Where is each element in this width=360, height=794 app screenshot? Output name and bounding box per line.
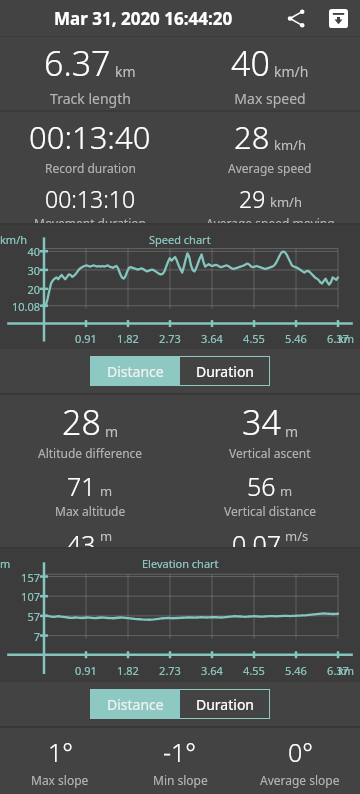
staticText: Distance	[107, 695, 164, 714]
staticText: 71	[67, 469, 96, 503]
button[interactable]: Share	[278, 0, 314, 36]
staticText: 7	[0, 629, 40, 644]
staticText: Distance	[107, 362, 164, 381]
staticText: Average slope	[260, 772, 340, 788]
staticText: m	[105, 422, 119, 441]
staticText: 56	[247, 469, 276, 503]
staticText: Max altitude	[55, 503, 126, 519]
staticText: m	[280, 482, 293, 500]
staticText: 3.64	[190, 663, 234, 678]
staticText: Average speed	[228, 160, 312, 176]
staticText: m	[100, 482, 113, 500]
staticText: 157	[0, 570, 40, 585]
staticText: 0.91	[64, 663, 108, 678]
staticText: km	[338, 663, 355, 678]
staticText: 40	[231, 40, 270, 86]
staticText: 00:13:10	[45, 183, 136, 214]
staticText: 1.82	[106, 663, 150, 678]
staticText: Max speed	[234, 89, 306, 108]
staticText: 43	[67, 527, 96, 547]
staticText: 4.55	[232, 663, 276, 678]
staticText: 20	[0, 282, 40, 297]
staticText: Duration	[196, 362, 255, 381]
staticText: 34	[242, 399, 281, 445]
staticText: 30	[0, 263, 40, 278]
staticText: Record duration	[45, 160, 136, 176]
staticText: Vertical ascent	[229, 445, 311, 461]
staticText: Elevation chart	[142, 556, 219, 571]
staticText: Vertical distance	[224, 503, 317, 519]
staticText: 2.73	[148, 663, 192, 678]
staticText: 28	[234, 116, 270, 158]
staticText: m/s	[285, 527, 309, 544]
staticText: Duration	[196, 695, 255, 714]
staticText: 2.73	[148, 331, 192, 346]
staticText: 40	[0, 244, 40, 259]
staticText: m	[285, 422, 299, 441]
staticText: km/h	[0, 232, 38, 247]
staticText: km	[115, 62, 136, 81]
staticText: 0.91	[64, 331, 108, 346]
button[interactable]: Distance	[90, 689, 180, 719]
staticText: Average speed moving	[206, 215, 335, 223]
button[interactable]: Save	[320, 0, 356, 36]
staticText: 6.37	[316, 331, 360, 346]
staticText: 28	[62, 399, 101, 445]
staticText: Mar 31, 2020 16:44:20	[54, 7, 278, 30]
staticText: m	[0, 556, 38, 571]
staticText: 00:13:40	[29, 116, 151, 158]
staticText: Min slope	[153, 772, 208, 788]
staticText: Movement duration	[34, 215, 146, 223]
staticText: 107	[0, 589, 40, 604]
staticText: Max slope	[31, 772, 89, 788]
staticText: 6.37	[316, 663, 360, 678]
staticText: m	[100, 527, 113, 544]
button[interactable]: Distance	[90, 356, 180, 386]
staticText: km/h	[274, 136, 306, 154]
staticText: 5.46	[274, 331, 318, 346]
staticText: Altitude difference	[38, 445, 143, 461]
button[interactable]: Duration	[180, 356, 270, 386]
staticText: 29	[239, 183, 266, 214]
staticText: 10.08	[0, 299, 40, 314]
staticText: 57	[0, 609, 40, 624]
staticText: km/h	[270, 193, 302, 211]
staticText: -1°	[163, 735, 197, 769]
staticText: 0.07	[232, 527, 281, 547]
staticText: 1°	[48, 735, 73, 769]
staticText: 1.82	[106, 331, 150, 346]
staticText: km	[338, 331, 355, 346]
staticText: 3.64	[190, 331, 234, 346]
staticText: Speed chart	[149, 232, 211, 247]
staticText: 4.55	[232, 331, 276, 346]
staticText: km/h	[274, 62, 309, 81]
staticText: 6.37	[44, 40, 111, 86]
button[interactable]: Duration	[180, 689, 270, 719]
staticText: 5.46	[274, 663, 318, 678]
staticText: Track length	[50, 89, 131, 108]
staticText: 0°	[288, 735, 313, 769]
